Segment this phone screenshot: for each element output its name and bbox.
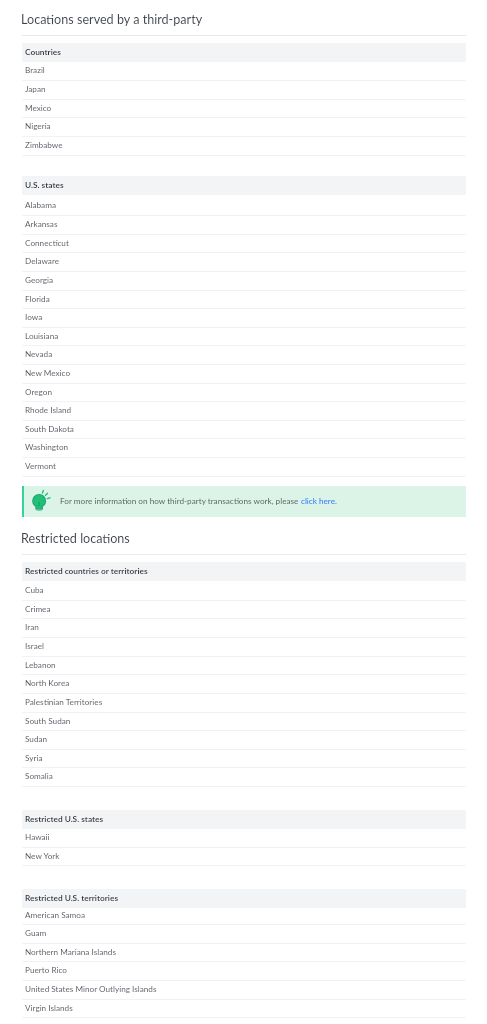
staticText: New York	[25, 851, 60, 861]
staticText: Crimea	[25, 604, 51, 614]
button[interactable]: Syria	[22, 750, 466, 769]
staticText: Iowa	[25, 312, 43, 322]
staticText: New Mexico	[25, 368, 71, 378]
staticText: Brazil	[25, 65, 45, 75]
button[interactable]: Vermont	[22, 458, 466, 477]
staticText: Vermont	[25, 461, 57, 471]
staticText: Japan	[25, 84, 46, 94]
staticText: Connecticut	[25, 238, 69, 248]
button[interactable]: Tip	[22, 486, 466, 517]
button[interactable]: Washington	[22, 439, 466, 458]
button[interactable]: South Sudan	[22, 713, 466, 732]
button[interactable]: Oregon	[22, 384, 466, 403]
staticText: Northern Mariana Islands	[25, 947, 116, 957]
button[interactable]: Georgia	[22, 272, 466, 291]
button[interactable]: U.S. states	[22, 176, 466, 195]
button[interactable]: Lebanon	[22, 657, 466, 676]
staticText: Restricted U.S. states	[25, 814, 104, 824]
staticText: Delaware	[25, 256, 60, 266]
button[interactable]: Restricted U.S. states	[22, 810, 466, 829]
staticText: Cuba	[25, 585, 44, 595]
staticText: South Dakota	[25, 424, 74, 434]
button[interactable]: Nevada	[22, 346, 466, 365]
staticText: Sudan	[25, 734, 48, 744]
staticText: Hawaii	[25, 832, 50, 842]
button[interactable]: United States Minor Outlying Islands	[22, 981, 466, 1000]
button[interactable]: Somalia	[22, 768, 466, 787]
staticText: Restricted locations	[21, 531, 130, 546]
staticText: United States Minor Outlying Islands	[25, 984, 157, 994]
button[interactable]: Arkansas	[22, 216, 466, 235]
button[interactable]: Alabama	[22, 197, 466, 216]
button[interactable]: Cuba	[22, 582, 466, 601]
button[interactable]: Japan	[22, 81, 466, 100]
staticText: Palestinian Territories	[25, 697, 103, 707]
button[interactable]: Palestinian Territories	[22, 694, 466, 713]
button[interactable]: Zimbabwe	[22, 137, 466, 156]
staticText: Arkansas	[25, 219, 58, 229]
staticText: U.S. states	[25, 180, 64, 190]
staticText: Virgin Islands	[25, 1003, 73, 1013]
staticText: Mexico	[25, 103, 52, 113]
button[interactable]: Puerto Rico	[22, 962, 466, 981]
button[interactable]: Israel	[22, 638, 466, 657]
button[interactable]: Brazil	[22, 62, 466, 81]
button[interactable]: Virgin Islands	[22, 1000, 466, 1019]
button[interactable]: Northern Mariana Islands	[22, 944, 466, 963]
button[interactable]: Connecticut	[22, 235, 466, 254]
button[interactable]: Rhode Island	[22, 402, 466, 421]
button[interactable]: click here	[301, 496, 335, 506]
button[interactable]: New Mexico	[22, 365, 466, 384]
button[interactable]: Nigeria	[22, 118, 466, 137]
staticText: Iran	[25, 622, 39, 632]
staticText: Rhode Island	[25, 405, 72, 415]
button[interactable]: Delaware	[22, 253, 466, 272]
staticText: Guam	[25, 928, 47, 938]
button[interactable]: Florida	[22, 291, 466, 310]
button[interactable]: American Samoa	[22, 907, 466, 926]
staticText: Restricted U.S. territories	[25, 893, 119, 903]
button[interactable]: Sudan	[22, 731, 466, 750]
button[interactable]: Iran	[22, 619, 466, 638]
button[interactable]: Restricted U.S. territories	[22, 889, 466, 908]
button[interactable]: Guam	[22, 925, 466, 944]
staticText: Countries	[25, 47, 61, 57]
staticText: American Samoa	[25, 910, 86, 920]
staticText: Alabama	[25, 200, 56, 210]
staticText: Zimbabwe	[25, 140, 63, 150]
button[interactable]: Louisiana	[22, 328, 466, 347]
button[interactable]: Iowa	[22, 309, 466, 328]
staticText: Nevada	[25, 349, 53, 359]
button[interactable]: Restricted countries or territories	[22, 562, 466, 581]
staticText: Restricted countries or territories	[25, 566, 148, 576]
staticText: Puerto Rico	[25, 965, 67, 975]
staticText: North Korea	[25, 678, 70, 688]
other: Tip	[32, 495, 49, 515]
staticText: Nigeria	[25, 121, 51, 131]
button[interactable]: South Dakota	[22, 421, 466, 440]
staticText: Washington	[25, 442, 69, 452]
staticText: Somalia	[25, 771, 53, 781]
staticText: Georgia	[25, 275, 54, 285]
staticText: Florida	[25, 294, 50, 304]
button[interactable]: Countries	[22, 43, 466, 62]
staticText: Oregon	[25, 387, 53, 397]
button[interactable]: Mexico	[22, 100, 466, 119]
staticText: South Sudan	[25, 716, 71, 726]
staticText: For more information on how third-party …	[60, 496, 301, 506]
button[interactable]: Hawaii	[22, 829, 466, 848]
button[interactable]: New York	[22, 848, 466, 867]
staticText: Israel	[25, 641, 44, 651]
staticText: Louisiana	[25, 331, 59, 341]
staticText: Locations served by a third-party	[21, 12, 203, 27]
staticText: Lebanon	[25, 660, 56, 670]
staticText: .	[335, 496, 337, 506]
button[interactable]: North Korea	[22, 675, 466, 694]
button[interactable]: Crimea	[22, 601, 466, 620]
staticText: Syria	[25, 753, 43, 763]
